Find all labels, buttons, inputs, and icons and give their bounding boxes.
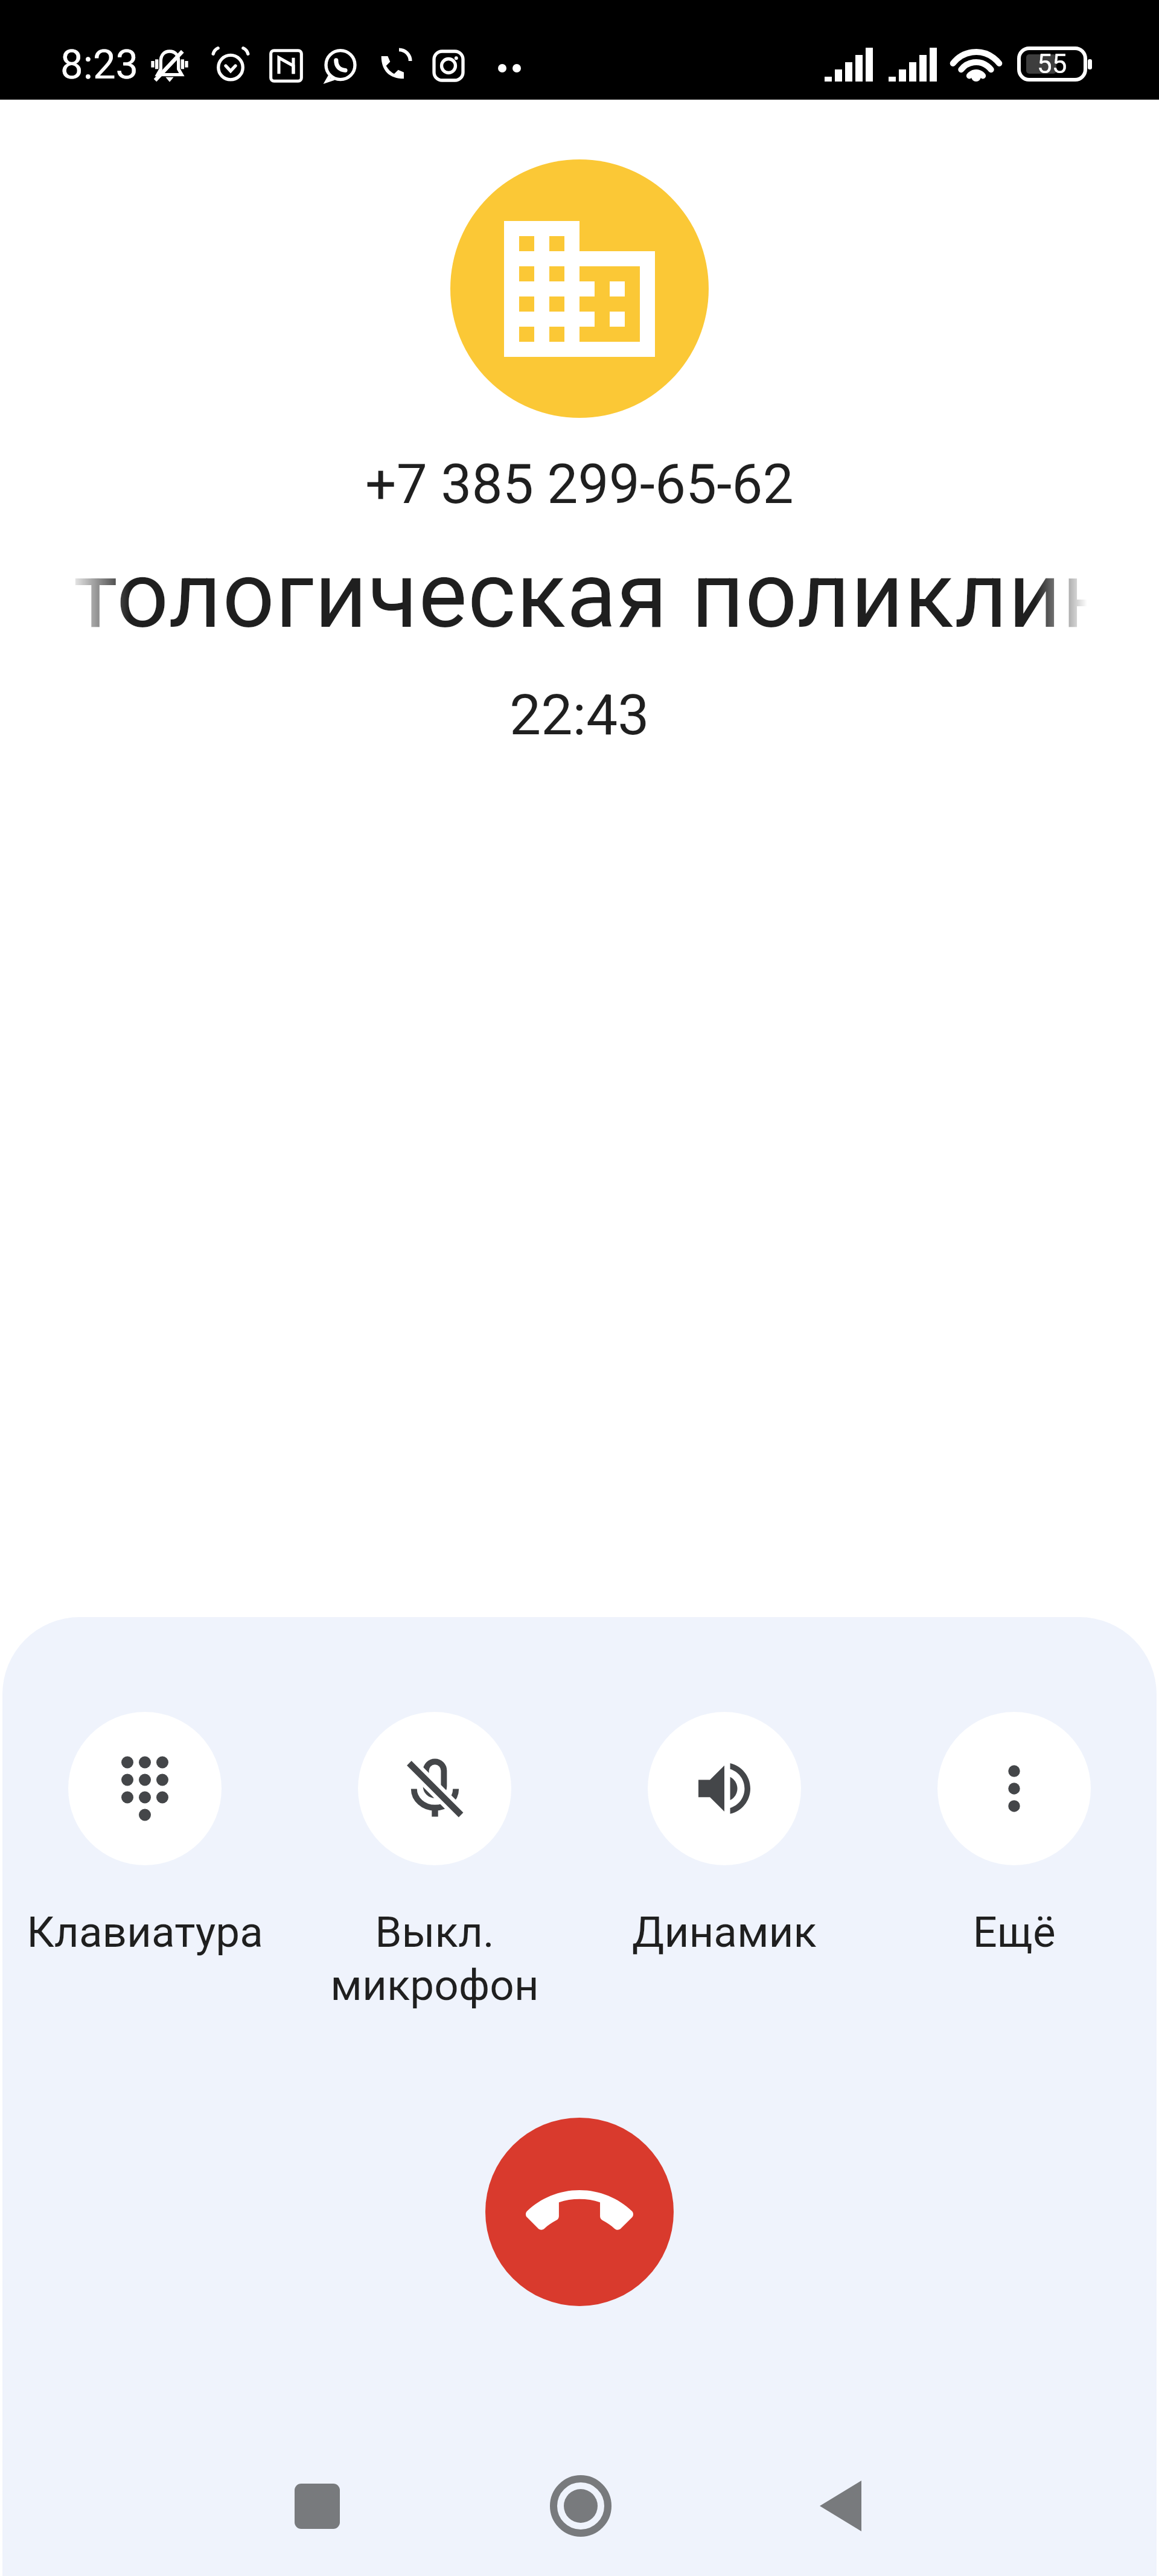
staticText: Стоматологическая поликлиника [0, 542, 1159, 649]
staticText: +7 385 299-65-62 [365, 452, 794, 517]
staticText: Клавиатура [27, 1907, 263, 1957]
button[interactable]: End call [485, 2118, 674, 2306]
button[interactable]: Back [804, 2470, 876, 2542]
staticText: 8:23 [60, 41, 139, 89]
staticText: Ещё [972, 1907, 1056, 1957]
button[interactable]: Home [544, 2470, 617, 2542]
button[interactable]: More options [875, 1712, 1153, 1953]
button[interactable]: Speaker [586, 1712, 863, 1953]
button[interactable]: Mute microphone [296, 1712, 573, 1953]
button[interactable]: Recents [281, 2470, 353, 2542]
staticText: Выкл. микрофон [330, 1907, 539, 2010]
staticText: Динамик [632, 1907, 817, 1957]
staticText: 55 [1037, 48, 1067, 80]
staticText: 22:43 [509, 682, 650, 748]
button[interactable]: Dialpad [6, 1712, 284, 1953]
